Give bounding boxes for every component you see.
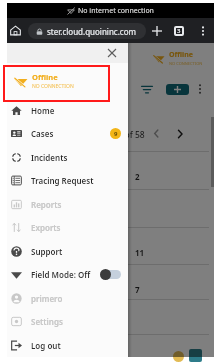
staticText: Field Mode: Off: [31, 269, 91, 280]
button[interactable]: Home: [7, 99, 128, 122]
staticText: 11: [135, 247, 145, 258]
button[interactable]: Filter: [137, 79, 157, 99]
button[interactable]: Cases: [7, 122, 128, 145]
button[interactable]: Chat: [189, 349, 202, 362]
button[interactable]: Offline: [153, 47, 203, 69]
button[interactable]: 7: [7, 264, 209, 299]
button[interactable]: Support: [7, 240, 128, 263]
staticText: No internet connection: [78, 6, 154, 16]
staticText: Reports: [31, 199, 62, 210]
staticText: 7: [135, 284, 140, 295]
button[interactable]: 2: [7, 151, 209, 189]
staticText: primero: [31, 293, 63, 304]
staticText: 2: [135, 171, 140, 182]
staticText: 1-20 of 58: [105, 129, 145, 141]
button[interactable]: ster.cloud.quoininc.com: [28, 23, 146, 39]
button[interactable]: Home: [7, 22, 24, 39]
button[interactable]: New tab: [148, 22, 165, 39]
button[interactable]: Add new record: [166, 84, 189, 95]
staticText: Cases: [31, 128, 54, 139]
staticText: Support: [31, 246, 63, 257]
button[interactable]: Help: [173, 351, 184, 362]
button[interactable]: 11: [7, 227, 209, 264]
staticText: Home: [31, 105, 55, 116]
button[interactable]: Exports: [7, 216, 128, 239]
staticText: Offline: [169, 50, 193, 60]
button[interactable]: Settings: [7, 310, 128, 333]
staticText: NO CONNECTION: [169, 61, 203, 66]
staticText: 3: [177, 27, 181, 35]
button[interactable]: [7, 189, 209, 227]
staticText: Settings: [31, 316, 63, 327]
button[interactable]: [7, 299, 209, 334]
staticText: Exports: [31, 222, 61, 233]
staticText: NO CONNECTION: [32, 83, 74, 90]
button[interactable]: Tracing Request: [7, 169, 128, 192]
staticText: Tracing Request: [31, 175, 94, 186]
button[interactable]: Log out: [7, 334, 128, 357]
staticText: Incidents: [31, 152, 68, 163]
staticText: Log out: [31, 340, 61, 351]
button[interactable]: Close navigation drawer: [104, 45, 120, 61]
button[interactable]: More options: [194, 22, 211, 39]
button[interactable]: Next page: [171, 125, 188, 142]
button[interactable]: Open tabs: [170, 22, 187, 39]
button[interactable]: primero: [7, 287, 128, 310]
staticText: 9: [114, 130, 118, 138]
button[interactable]: More options: [192, 81, 208, 97]
button[interactable]: Offline: [7, 63, 128, 98]
button[interactable]: Reports: [7, 193, 128, 216]
button[interactable]: [7, 334, 209, 360]
staticText: ster.cloud.quoininc.com: [47, 26, 137, 37]
staticText: Offline: [32, 72, 58, 82]
button[interactable]: Field Mode: Off: [7, 263, 128, 286]
button[interactable]: Incidents: [7, 146, 128, 169]
button[interactable]: Previous page: [148, 125, 165, 142]
